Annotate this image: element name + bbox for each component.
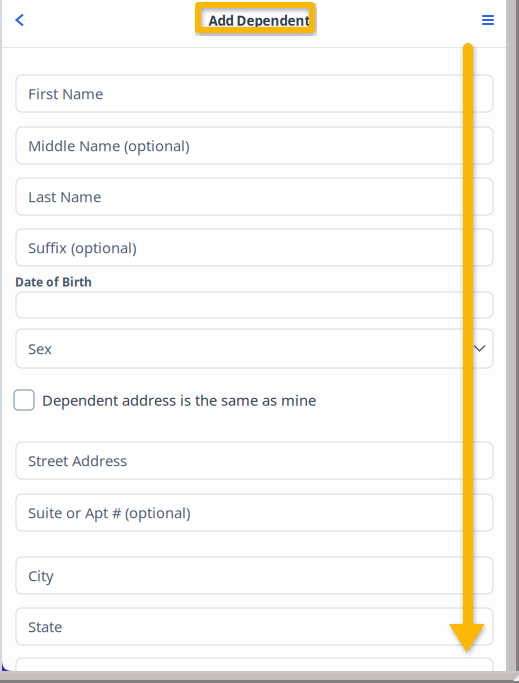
staticText: Dependent address is the same as mine [42, 390, 316, 410]
staticText: Last Name [28, 187, 101, 206]
staticText: State [28, 617, 62, 636]
button[interactable]: Suffix (optional) [16, 229, 493, 266]
staticText: Street Address [28, 451, 127, 470]
staticText: Middle Name (optional) [28, 136, 189, 155]
staticText: Sex [28, 339, 52, 358]
button[interactable]: Dependent address is the same as mine [14, 389, 316, 411]
button[interactable]: Street Address [16, 442, 493, 479]
staticText: First Name [28, 84, 103, 103]
staticText: City [28, 566, 53, 585]
button[interactable]: Sex [16, 329, 493, 368]
button[interactable]: Suite or Apt # (optional) [16, 494, 493, 531]
button[interactable]: Back [3, 0, 37, 40]
button[interactable]: Menu [471, 2, 505, 38]
button[interactable]: Last Name [16, 178, 493, 215]
staticText: Suffix (optional) [28, 238, 136, 257]
button[interactable]: State [16, 608, 493, 645]
button[interactable]: Middle Name (optional) [16, 127, 493, 164]
button[interactable]: First Name [16, 75, 493, 112]
button[interactable]: City [16, 557, 493, 594]
staticText: Add Dependent [208, 12, 310, 29]
button[interactable]: ZIP Code [16, 658, 493, 683]
button[interactable]: Date of Birth [16, 292, 493, 318]
staticText: Date of Birth [15, 274, 92, 290]
staticText: Suite or Apt # (optional) [28, 503, 190, 522]
